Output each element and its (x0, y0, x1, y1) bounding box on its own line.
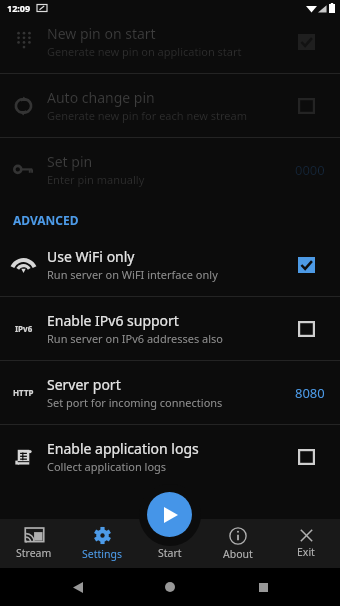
staticText: Collect application logs (47, 459, 167, 474)
button[interactable]: Recent apps (248, 572, 278, 602)
staticText: Enter pin manually (47, 172, 145, 187)
staticText: Run server on WiFI interface only (47, 267, 218, 282)
button[interactable]: Start streaming (147, 492, 192, 537)
staticText: Use WiFi only (47, 247, 135, 266)
staticText: Stream (16, 546, 52, 560)
staticText: Auto change pin (47, 88, 155, 107)
staticText: ADVANCED (13, 212, 79, 228)
staticText: HTTP (13, 387, 34, 398)
staticText: New pin on start (47, 24, 156, 43)
staticText: IPv6 (15, 323, 33, 334)
button[interactable]: Stream (0, 519, 68, 568)
button[interactable]: IPv6 (0, 297, 340, 360)
staticText: About (223, 547, 253, 561)
button[interactable]: Toggle setting (298, 257, 315, 273)
button[interactable]: Home (155, 572, 185, 602)
button[interactable]: Toggle setting (298, 98, 315, 114)
staticText: Settings (82, 547, 122, 561)
staticText: 0000 (295, 161, 325, 179)
staticText: Exit (297, 545, 315, 559)
button[interactable]: HTTP (0, 361, 340, 424)
button[interactable]: Toggle setting (298, 449, 315, 465)
staticText: Enable IPv6 support (47, 311, 179, 330)
staticText: 12:09 (7, 2, 31, 14)
staticText: Start (158, 546, 182, 560)
staticText: Generate new pin on application start (47, 44, 242, 59)
button[interactable]: Back (63, 572, 93, 602)
button[interactable]: Auto change pin (0, 74, 340, 137)
button[interactable]: Toggle setting (298, 34, 315, 50)
staticText: Set pin (47, 152, 93, 171)
staticText: Set port for incoming connections (47, 395, 223, 410)
button[interactable]: About (204, 519, 272, 568)
staticText: Run server on IPv6 addresses also (47, 331, 223, 346)
button[interactable]: Exit (272, 519, 340, 568)
staticText: Generate new pin for each new stream (47, 108, 247, 123)
button[interactable]: Enable application logs (0, 425, 340, 488)
button[interactable]: Toggle setting (298, 321, 315, 337)
button[interactable]: Settings (68, 519, 136, 568)
button[interactable]: Use WiFi only (0, 233, 340, 296)
staticText: Server port (47, 375, 121, 394)
button[interactable]: Set pin (0, 138, 340, 201)
button[interactable]: Start (136, 519, 204, 568)
button[interactable]: New pin on start (0, 10, 340, 73)
staticText: Enable application logs (47, 439, 199, 458)
staticText: 8080 (295, 384, 325, 402)
